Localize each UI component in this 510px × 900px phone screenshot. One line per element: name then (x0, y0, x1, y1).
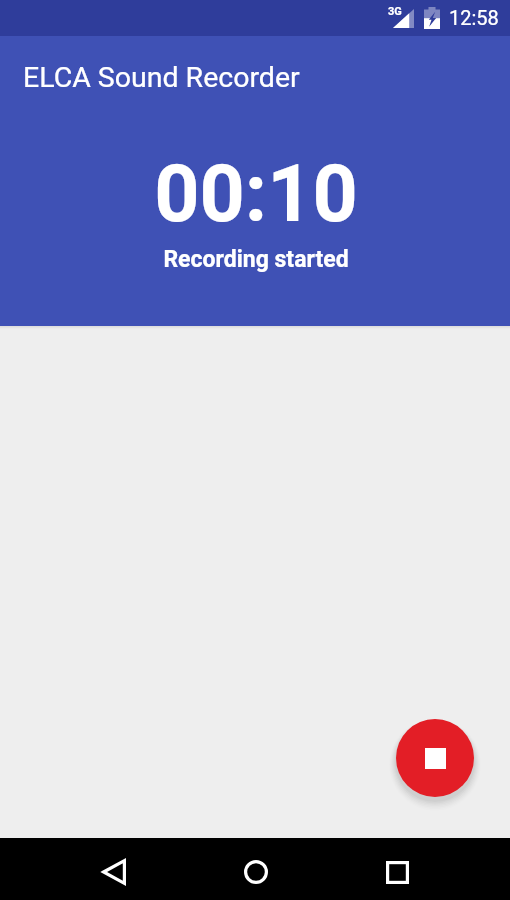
staticText: 00:10 (1, 148, 510, 241)
button[interactable]: Home (232, 848, 280, 896)
staticText: 3G (388, 5, 402, 18)
button[interactable]: Stop recording (396, 719, 474, 797)
staticText: 12:58 (449, 6, 499, 29)
staticText: Recording started (1, 246, 510, 273)
button[interactable]: Back (90, 848, 138, 896)
button[interactable]: Recents (373, 848, 421, 896)
staticText: ELCA Sound Recorder (23, 61, 300, 94)
